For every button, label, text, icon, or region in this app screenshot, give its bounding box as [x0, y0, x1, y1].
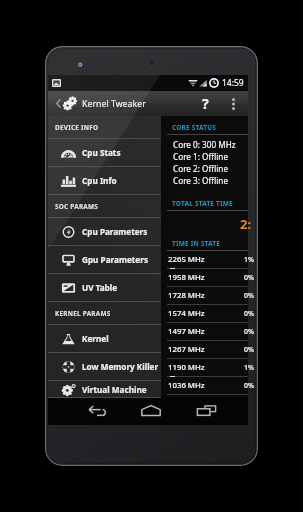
staticText: 0% — [244, 273, 254, 283]
button[interactable]: Kernel — [48, 325, 161, 353]
staticText: 0% — [244, 381, 254, 391]
staticText: CORE STATUS — [172, 123, 217, 132]
button[interactable]: UV Table — [48, 274, 161, 302]
staticText: 1574 MHz — [168, 308, 205, 319]
button[interactable]: Cpu Parameters — [48, 218, 161, 246]
button[interactable]: Help — [192, 91, 218, 116]
button[interactable]: Cpu Stats — [48, 139, 161, 167]
staticText: 1036 MHz — [168, 380, 205, 391]
staticText: Kernel Tweaker — [82, 98, 146, 110]
button[interactable]: 1958 MHz — [167, 269, 248, 287]
staticText: TIME IN STATE — [172, 239, 221, 248]
staticText: 14:59 — [222, 77, 244, 89]
staticText: Virtual Machine — [82, 384, 147, 395]
staticText: 1% — [244, 255, 254, 265]
staticText: 0% — [244, 309, 254, 319]
staticText: 1497 MHz — [168, 326, 205, 337]
staticText: 0% — [244, 327, 254, 337]
staticText: 1958 MHz — [168, 272, 205, 283]
button[interactable]: 1728 MHz — [167, 287, 248, 305]
staticText: 1267 MHz — [168, 344, 205, 355]
button[interactable]: 1497 MHz — [167, 323, 248, 341]
staticText: Core 0: 300 MHz — [173, 139, 236, 150]
staticText: Gpu Parameters — [82, 254, 149, 265]
staticText: KERNEL PARAMS — [55, 309, 111, 318]
button[interactable]: Recent apps — [185, 397, 227, 424]
button[interactable]: More options — [218, 91, 248, 116]
staticText: Core 2: Offline — [173, 163, 229, 174]
staticText: 2265 MHz — [168, 254, 205, 265]
staticText: Low Memory Killer — [82, 361, 159, 372]
staticText: SOC PARAMS — [55, 202, 99, 211]
button[interactable]: 1036 MHz — [167, 377, 248, 395]
button[interactable]: Back — [76, 397, 118, 424]
staticText: 1728 MHz — [168, 290, 205, 301]
staticText: Cpu Info — [82, 175, 117, 186]
staticText: 0% — [244, 345, 254, 355]
button[interactable]: 1190 MHz — [167, 359, 248, 377]
staticText: Core 3: Offline — [173, 175, 229, 186]
staticText: Cpu Parameters — [82, 226, 148, 237]
staticText: TOTAL STATE TIME — [172, 199, 233, 208]
staticText: ? — [202, 94, 209, 113]
staticText: 1% — [244, 363, 254, 373]
button[interactable]: Low Memory Killer — [48, 353, 161, 381]
staticText: 1190 MHz — [168, 362, 205, 373]
staticText: 0% — [244, 291, 254, 301]
staticText: 2: — [240, 215, 252, 233]
button[interactable]: Virtual Machine — [48, 381, 161, 398]
button[interactable]: Gpu Parameters — [48, 246, 161, 274]
button[interactable]: Navigate up — [48, 91, 152, 116]
button[interactable]: Cpu Info — [48, 167, 161, 195]
button[interactable]: 1574 MHz — [167, 305, 248, 323]
staticText: Core 1: Offline — [173, 151, 229, 162]
button[interactable]: 1267 MHz — [167, 341, 248, 359]
staticText: Kernel — [82, 333, 109, 344]
button[interactable]: 2265 MHz — [167, 251, 248, 269]
staticText: Cpu Stats — [82, 147, 121, 158]
staticText: UV Table — [82, 282, 118, 293]
staticText: DEVICE INFO — [55, 123, 99, 132]
button[interactable]: Home — [130, 397, 172, 424]
